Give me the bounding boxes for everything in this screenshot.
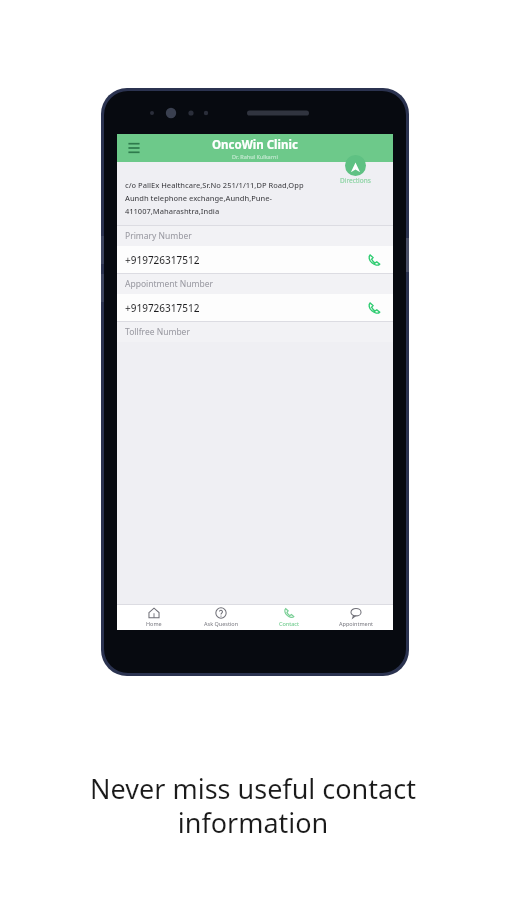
staticText: Directions <box>340 176 371 185</box>
other: Call +919726317512 <box>367 301 381 315</box>
staticText: Ask Question <box>204 620 239 627</box>
button[interactable]: Directions <box>340 155 371 185</box>
button[interactable]: Home <box>123 604 185 630</box>
button[interactable]: Menu <box>125 139 143 157</box>
other: Directions <box>345 155 366 176</box>
staticText: Never miss useful contact information <box>90 770 416 841</box>
staticText: +919726317512 <box>125 253 367 267</box>
staticText: Primary Number <box>125 230 192 242</box>
staticText: OncoWin Clinic <box>212 137 298 153</box>
button[interactable]: Contact <box>258 604 320 630</box>
staticText: c/o PallEx Healthcare,Sr.No 251/1/11,DP … <box>125 180 304 190</box>
staticText: 411007,Maharashtra,India <box>125 206 220 216</box>
button[interactable]: Appointment <box>325 604 387 630</box>
staticText: Tollfree Number <box>125 326 190 338</box>
button[interactable]: Ask Question <box>190 604 252 630</box>
button[interactable]: +919726317512 <box>117 294 393 321</box>
staticText: Contact <box>279 620 299 627</box>
button[interactable]: +919726317512 <box>117 246 393 273</box>
staticText: Aundh telephone exchange,Aundh,Pune- <box>125 193 272 203</box>
other: Call +919726317512 <box>367 253 381 267</box>
staticText: Appointment <box>339 620 374 627</box>
staticText: Appointment Number <box>125 278 214 290</box>
staticText: Home <box>146 620 162 627</box>
staticText: +919726317512 <box>125 301 367 315</box>
staticText: Dr. Rahul Kulkarni <box>232 153 278 160</box>
